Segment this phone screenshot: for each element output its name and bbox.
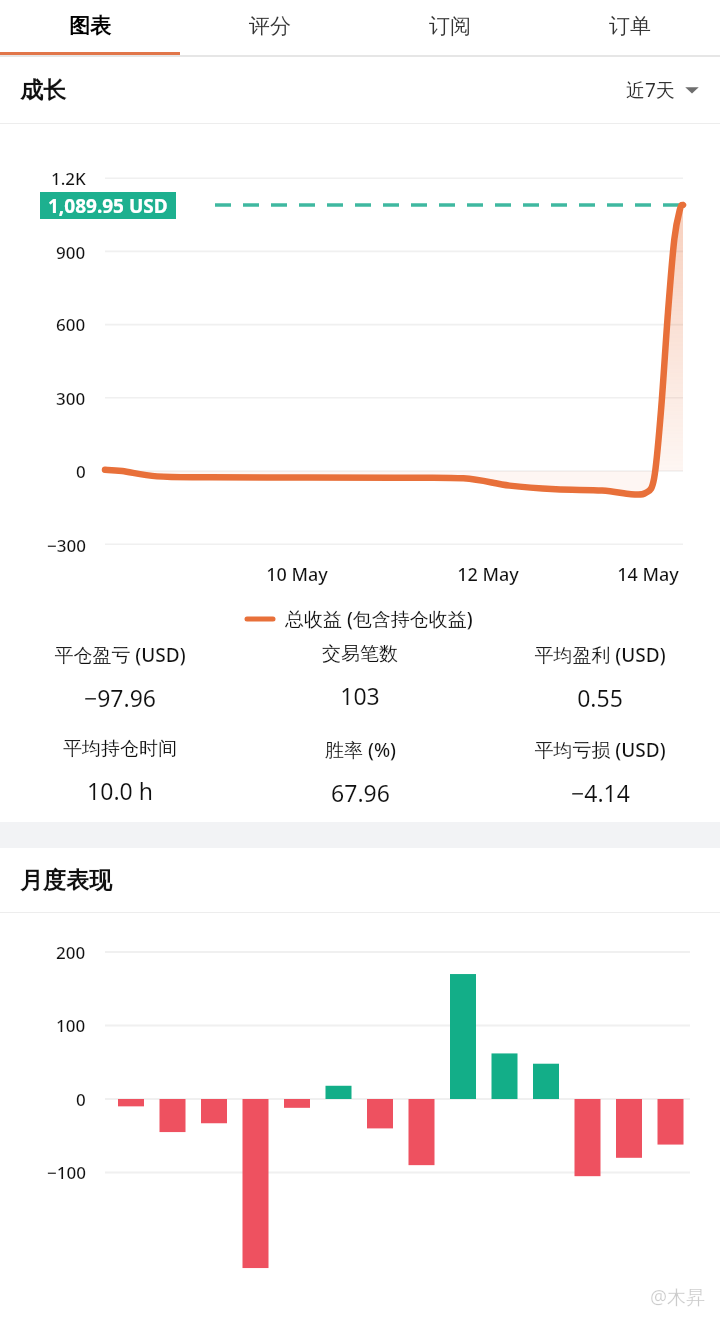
- staticText: 10.0 h: [87, 775, 153, 806]
- staticText: −4.14: [571, 777, 630, 808]
- staticText: 交易笔数: [322, 642, 398, 666]
- staticText: 100: [56, 1014, 86, 1037]
- staticText: 12 May: [457, 562, 519, 587]
- button[interactable]: 平均持仓时间: [0, 737, 240, 806]
- staticText: 67.96: [331, 777, 390, 808]
- staticText: 1,089.95 USD: [48, 193, 168, 219]
- staticText: @木昇: [650, 1284, 706, 1310]
- staticText: 订单: [609, 13, 651, 39]
- button[interactable]: 图表: [0, 0, 180, 52]
- staticText: −100: [47, 1161, 86, 1184]
- staticText: 900: [56, 241, 86, 264]
- button[interactable]: 订单: [540, 0, 720, 52]
- staticText: 平均亏损 (USD): [534, 737, 666, 763]
- staticText: 300: [56, 387, 86, 410]
- staticText: 近7天: [626, 77, 675, 103]
- staticText: −300: [47, 534, 86, 557]
- staticText: 订阅: [429, 13, 471, 39]
- staticText: 成长: [20, 76, 66, 105]
- staticText: 1.2K: [51, 167, 86, 190]
- staticText: 14 May: [617, 562, 679, 587]
- staticText: 平均持仓时间: [63, 737, 177, 761]
- staticText: 103: [340, 680, 380, 711]
- staticText: 0: [76, 460, 86, 483]
- staticText: 图表: [69, 13, 111, 39]
- staticText: 600: [56, 313, 86, 336]
- staticText: 月度表现: [20, 866, 112, 895]
- button[interactable]: 近7天: [626, 77, 700, 103]
- staticText: 0: [76, 1088, 86, 1111]
- button[interactable]: 交易笔数: [240, 642, 480, 711]
- staticText: 总收益 (包含持仓收益): [285, 606, 473, 632]
- button[interactable]: 评分: [180, 0, 360, 52]
- staticText: 平均盈利 (USD): [534, 642, 666, 668]
- staticText: 平仓盈亏 (USD): [54, 642, 186, 668]
- button[interactable]: 订阅: [360, 0, 540, 52]
- button[interactable]: 平均亏损 (USD): [480, 737, 720, 808]
- staticText: −97.96: [84, 682, 156, 713]
- button[interactable]: 平均盈利 (USD): [480, 642, 720, 713]
- staticText: 0.55: [577, 682, 623, 713]
- staticText: 10 May: [266, 562, 328, 587]
- button[interactable]: 胜率 (%): [240, 737, 480, 808]
- staticText: 200: [56, 941, 86, 964]
- staticText: 评分: [249, 13, 291, 39]
- button[interactable]: 平仓盈亏 (USD): [0, 642, 240, 713]
- staticText: 胜率 (%): [325, 737, 396, 763]
